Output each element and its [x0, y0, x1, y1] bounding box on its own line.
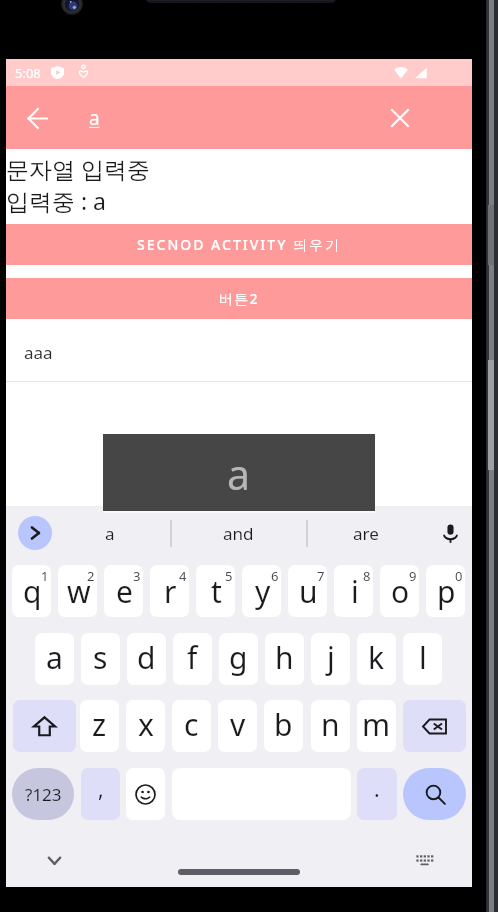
- staticText: 7: [317, 567, 325, 585]
- staticText: 5:08: [15, 64, 41, 82]
- staticText: z: [92, 704, 107, 745]
- button[interactable]: SECNOD ACTIVITY 띄우기: [6, 224, 472, 265]
- button[interactable]: l: [403, 633, 442, 685]
- staticText: l: [419, 637, 427, 678]
- staticText: a: [89, 105, 100, 131]
- staticText: u: [299, 571, 318, 612]
- staticText: d: [137, 637, 156, 678]
- button[interactable]: z: [80, 700, 119, 752]
- button[interactable]: a: [82, 98, 372, 138]
- button[interactable]: n: [311, 700, 350, 752]
- staticText: a: [46, 637, 63, 678]
- button[interactable]: c: [172, 700, 211, 752]
- button[interactable]: and: [183, 506, 293, 560]
- button[interactable]: are: [311, 506, 421, 560]
- staticText: v: [230, 704, 246, 745]
- staticText: 5: [225, 567, 233, 585]
- staticText: SECNOD ACTIVITY 띄우기: [137, 235, 341, 254]
- staticText: 2: [87, 567, 95, 585]
- button[interactable]: More suggestions: [18, 516, 52, 550]
- button[interactable]: d: [127, 633, 166, 685]
- button[interactable]: Emoji: [126, 768, 165, 820]
- staticText: j: [327, 637, 335, 678]
- button[interactable]: Clear search: [373, 91, 427, 145]
- staticText: 문자열 입력중: [6, 153, 150, 184]
- button[interactable]: ?123: [12, 768, 74, 820]
- staticText: b: [274, 704, 293, 745]
- button[interactable]: k: [357, 633, 396, 685]
- staticText: 입력중 : a: [6, 185, 107, 216]
- staticText: 9: [409, 567, 417, 585]
- staticText: k: [368, 637, 385, 678]
- button[interactable]: 6: [242, 565, 281, 617]
- button[interactable]: Change keyboard: [402, 838, 447, 883]
- button[interactable]: a: [35, 633, 74, 685]
- staticText: 8: [363, 567, 371, 585]
- button[interactable]: h: [265, 633, 304, 685]
- staticText: 버튼2: [219, 289, 259, 308]
- staticText: 1: [41, 567, 49, 585]
- staticText: s: [93, 637, 108, 678]
- button[interactable]: 2: [58, 565, 97, 617]
- staticText: are: [353, 522, 379, 545]
- staticText: m: [362, 704, 391, 745]
- staticText: e: [116, 571, 133, 612]
- staticText: f: [187, 637, 198, 678]
- staticText: c: [184, 704, 199, 745]
- button[interactable]: 0: [426, 565, 465, 617]
- button[interactable]: a: [55, 506, 165, 560]
- staticText: y: [255, 571, 271, 612]
- button[interactable]: 9: [380, 565, 419, 617]
- staticText: i: [351, 571, 359, 612]
- button[interactable]: b: [264, 700, 303, 752]
- staticText: .: [374, 775, 380, 804]
- staticText: p: [437, 571, 456, 612]
- staticText: aaa: [24, 341, 53, 364]
- staticText: t: [211, 571, 222, 612]
- staticText: n: [321, 704, 340, 745]
- staticText: x: [138, 704, 154, 745]
- button[interactable]: .: [357, 768, 397, 820]
- staticText: w: [67, 571, 91, 612]
- button[interactable]: 1: [12, 565, 51, 617]
- staticText: and: [223, 522, 254, 545]
- button[interactable]: x: [126, 700, 165, 752]
- button[interactable]: v: [218, 700, 257, 752]
- button[interactable]: Shift: [13, 700, 76, 752]
- button[interactable]: 5: [196, 565, 235, 617]
- button[interactable]: Search: [403, 768, 466, 820]
- staticText: ?123: [25, 783, 62, 806]
- button[interactable]: 버튼2: [6, 278, 472, 319]
- button[interactable]: Hide keyboard: [32, 838, 77, 883]
- button[interactable]: 4: [150, 565, 189, 617]
- button[interactable]: Voice input: [432, 515, 468, 551]
- staticText: q: [23, 571, 42, 612]
- staticText: 0: [455, 567, 463, 585]
- button[interactable]: 8: [334, 565, 373, 617]
- staticText: 6: [271, 567, 279, 585]
- staticText: a: [105, 522, 115, 545]
- staticText: h: [275, 637, 294, 678]
- button[interactable]: 3: [104, 565, 143, 617]
- staticText: a: [227, 446, 251, 502]
- button[interactable]: s: [81, 633, 120, 685]
- button[interactable]: g: [219, 633, 258, 685]
- button[interactable]: j: [311, 633, 350, 685]
- staticText: 3: [133, 567, 141, 585]
- staticText: r: [164, 571, 177, 612]
- button[interactable]: Navigate up: [10, 91, 64, 145]
- button[interactable]: ,: [81, 768, 120, 820]
- button[interactable]: f: [173, 633, 212, 685]
- staticText: 4: [179, 567, 187, 585]
- button[interactable]: Backspace: [403, 700, 466, 752]
- staticText: o: [391, 571, 410, 612]
- staticText: ,: [98, 775, 104, 804]
- button[interactable]: aaa: [6, 324, 472, 381]
- button[interactable]: 7: [288, 565, 327, 617]
- staticText: g: [229, 637, 248, 678]
- button[interactable]: m: [357, 700, 396, 752]
